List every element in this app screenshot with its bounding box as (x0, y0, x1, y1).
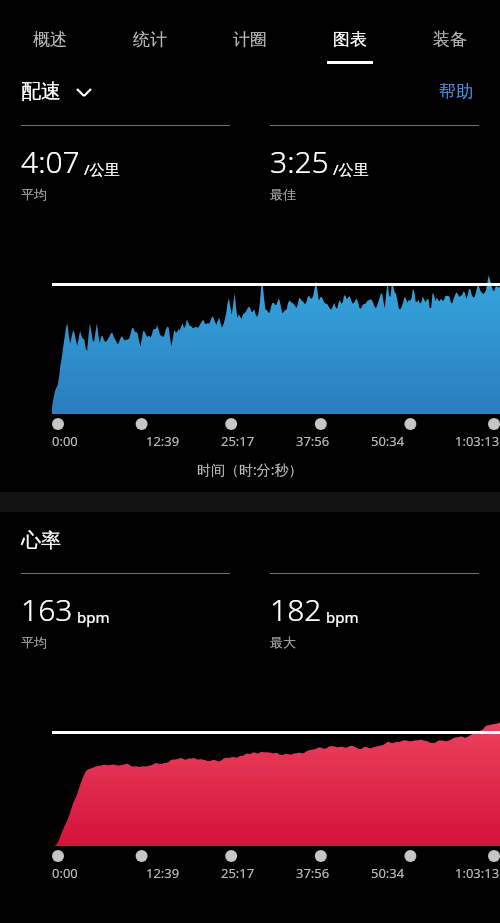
button[interactable]: 概述 (0, 0, 100, 70)
staticText: 图表 (333, 29, 367, 50)
staticText: 计圈 (233, 29, 267, 50)
staticText: 12:39 (146, 432, 180, 450)
button[interactable]: 帮助 (433, 75, 479, 108)
staticText: 最佳 (270, 186, 296, 202)
staticText: /公里 (333, 159, 369, 179)
staticText: 3:25 (270, 141, 329, 182)
staticText: 25:17 (221, 432, 255, 450)
staticText: 163 (21, 589, 73, 630)
button[interactable]: 图表 (300, 0, 400, 70)
staticText: 1:03:13 (455, 432, 500, 450)
staticText: 0:00 (52, 864, 78, 882)
button[interactable]: 统计 (100, 0, 200, 70)
button[interactable]: 配速 (21, 75, 93, 108)
button[interactable]: 计圈 (200, 0, 300, 70)
staticText: bpm (77, 607, 110, 627)
staticText: 25:17 (221, 864, 255, 882)
staticText: 时间（时:分:秒） (197, 460, 303, 479)
staticText: 37:56 (296, 432, 330, 450)
staticText: 概述 (33, 29, 67, 50)
staticText: 最大 (270, 634, 296, 650)
staticText: 50:34 (371, 864, 405, 882)
staticText: 37:56 (296, 864, 330, 882)
staticText: 12:39 (146, 864, 180, 882)
staticText: bpm (326, 607, 359, 627)
staticText: 心率 (21, 528, 61, 553)
staticText: 配速 (21, 79, 61, 104)
staticText: 平均 (21, 634, 47, 650)
staticText: 统计 (133, 29, 167, 50)
staticText: 4:07 (21, 141, 80, 182)
other: 展开选择 (75, 83, 93, 101)
staticText: 182 (270, 589, 322, 630)
staticText: 帮助 (439, 81, 473, 102)
staticText: 50:34 (371, 432, 405, 450)
staticText: 装备 (433, 29, 467, 50)
button[interactable]: 装备 (400, 0, 500, 70)
staticText: /公里 (84, 159, 120, 179)
staticText: 1:03:13 (455, 864, 500, 882)
staticText: 0:00 (52, 432, 78, 450)
staticText: 平均 (21, 186, 47, 202)
